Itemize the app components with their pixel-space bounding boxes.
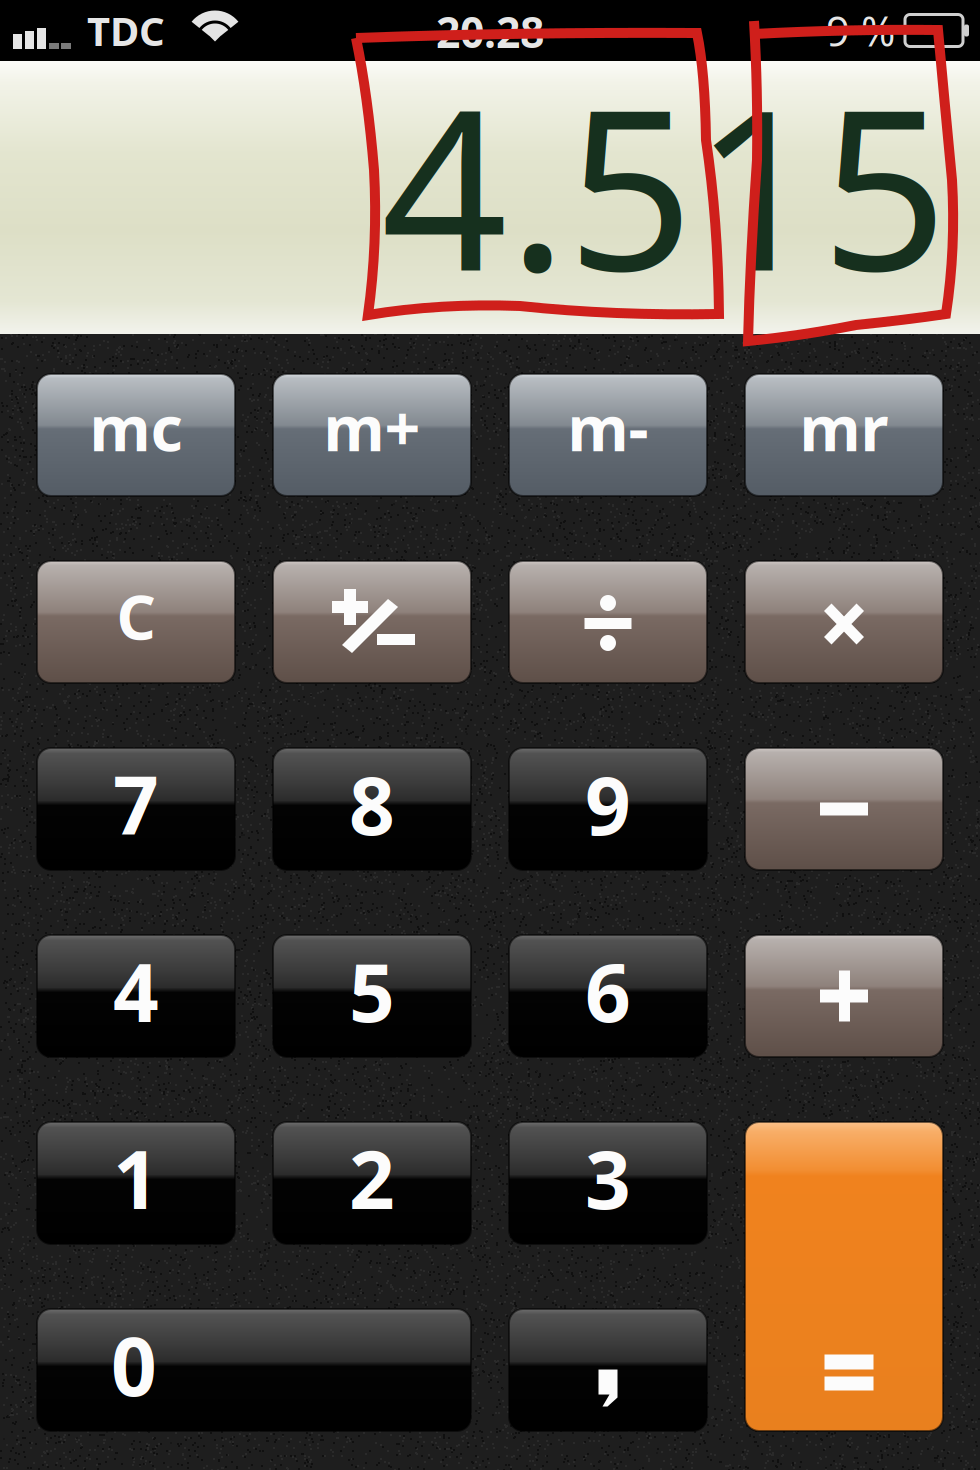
button[interactable]: 1 xyxy=(37,1122,235,1244)
button[interactable]: 8 xyxy=(273,748,471,870)
staticText: mr xyxy=(799,384,888,470)
staticText: 9 % xyxy=(826,2,895,59)
staticText: 4.515 xyxy=(381,34,948,335)
button[interactable]: 3 xyxy=(509,1122,707,1244)
button[interactable]: 7 xyxy=(37,748,235,870)
button[interactable]: decimal separator xyxy=(509,1309,707,1431)
staticText: 1 xyxy=(113,1123,159,1232)
button[interactable]: 9 xyxy=(509,748,707,870)
staticText: 5 xyxy=(349,936,395,1045)
button[interactable]: plus minus xyxy=(273,561,471,683)
staticText: 9 xyxy=(585,749,631,858)
button[interactable]: 6 xyxy=(509,935,707,1057)
staticText: 8 xyxy=(349,749,395,858)
staticText: mc xyxy=(89,384,182,470)
button[interactable]: equals xyxy=(745,1122,943,1431)
button[interactable]: mc xyxy=(37,374,235,496)
staticText: TDC xyxy=(87,3,165,58)
button[interactable]: plus xyxy=(745,935,943,1057)
button[interactable]: divide xyxy=(509,561,707,683)
button[interactable]: 0 xyxy=(37,1309,471,1431)
button[interactable]: minus xyxy=(745,748,943,870)
button[interactable]: clear xyxy=(37,561,235,683)
staticText: 4 xyxy=(113,936,159,1045)
staticText: 6 xyxy=(585,936,631,1045)
staticText: C xyxy=(116,574,155,658)
staticText: 7 xyxy=(113,749,159,858)
button[interactable]: m- xyxy=(509,374,707,496)
staticText: 2 xyxy=(349,1123,395,1232)
staticText: m- xyxy=(567,384,648,470)
staticText: 20.28 xyxy=(436,2,544,60)
staticText: 3 xyxy=(585,1123,631,1232)
button[interactable]: 2 xyxy=(273,1122,471,1244)
button[interactable]: 5 xyxy=(273,935,471,1057)
button[interactable]: mr xyxy=(745,374,943,496)
button[interactable]: m+ xyxy=(273,374,471,496)
button[interactable]: 4 xyxy=(37,935,235,1057)
staticText: 0 xyxy=(111,1310,157,1419)
button[interactable]: multiply xyxy=(745,561,943,683)
staticText: m+ xyxy=(323,384,420,470)
